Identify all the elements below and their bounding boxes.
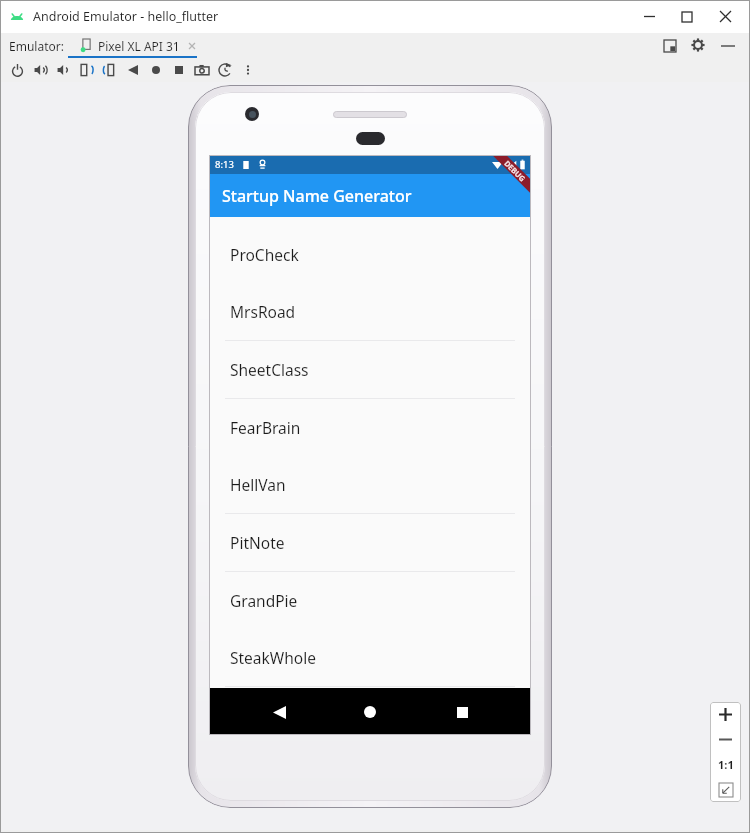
button[interactable]: Recent apps [440,690,484,734]
button[interactable]: Fit to window [710,777,741,802]
staticText: Emulator: [9,38,64,54]
button[interactable]: HellVan [209,456,531,513]
button[interactable]: Overview [167,58,190,82]
button[interactable]: Hide [720,38,736,54]
button[interactable]: Close tab [187,41,197,51]
staticText: Android Emulator - hello_flutter [33,8,219,25]
button[interactable]: Panel layout [662,38,678,54]
staticText: DEBUG [502,158,528,184]
button[interactable]: SteakWhole [209,629,531,686]
button[interactable]: Rotate left [75,58,98,82]
staticText: FearBrain [230,417,301,438]
staticText: ProCheck [230,244,299,265]
staticText: Pixel XL API 31 [98,38,180,54]
button[interactable]: Volume up [29,58,52,82]
staticText: SheetClass [230,359,309,380]
button[interactable]: Minimize [630,0,668,33]
button[interactable]: Close [706,0,744,33]
staticText: 1:1 [718,757,734,772]
button[interactable]: Rotate right [98,58,121,82]
staticText: PitNote [230,532,285,553]
button[interactable]: Zoom out [710,727,741,752]
button[interactable]: Power [6,58,29,82]
button[interactable]: SheetClass [209,341,531,398]
button[interactable]: History [213,58,236,82]
staticText: 8:13 [215,158,234,171]
staticText: SteakWhole [230,647,316,668]
button[interactable]: FearBrain [209,399,531,456]
button[interactable]: Actual size [710,752,741,777]
button[interactable]: Screenshot [190,58,213,82]
button[interactable]: Home [348,690,392,734]
button[interactable]: Maximize [668,0,706,33]
button[interactable]: Volume down [52,58,75,82]
staticText: GrandPie [230,590,298,611]
button[interactable]: GrandPie [209,572,531,629]
button[interactable]: Pixel XL API 31 [80,33,197,58]
button[interactable]: Back [121,58,144,82]
button[interactable]: Zoom in [710,702,741,727]
button[interactable]: Settings [691,38,707,54]
button[interactable]: Back [257,690,301,734]
button[interactable]: PitNote [209,514,531,571]
staticText: HellVan [230,474,286,495]
button[interactable]: More [236,58,259,82]
staticText: MrsRoad [230,301,296,322]
button[interactable]: Home [144,58,167,82]
button[interactable]: MrsRoad [209,283,531,340]
staticText: Startup Name Generator [222,185,412,207]
button[interactable]: ProCheck [209,226,531,283]
